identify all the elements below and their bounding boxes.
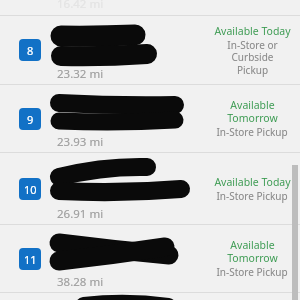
staticText: 11 bbox=[24, 252, 37, 267]
staticText: Available Tomorrow bbox=[227, 238, 278, 265]
staticText: 23.32 mi bbox=[57, 66, 104, 82]
button[interactable]: 10 bbox=[0, 153, 300, 224]
staticText: Available Today bbox=[214, 175, 291, 189]
staticText: 10 bbox=[24, 182, 37, 197]
staticText: 16.42 mi bbox=[57, 0, 104, 11]
button[interactable]: 11 bbox=[0, 225, 300, 292]
button[interactable]: 9 bbox=[0, 85, 300, 152]
staticText: 38.28 mi bbox=[57, 274, 104, 290]
staticText: 23.93 mi bbox=[57, 134, 104, 150]
staticText: In-Store Pickup bbox=[216, 265, 288, 279]
staticText: In-Store Pickup bbox=[216, 125, 288, 139]
staticText: In-Store or Curbside Pickup bbox=[227, 38, 278, 77]
button[interactable] bbox=[0, 293, 300, 300]
staticText: Available Today bbox=[214, 24, 291, 38]
staticText: 8 bbox=[27, 43, 34, 58]
staticText: In-Store Pickup bbox=[216, 189, 288, 203]
staticText: 9 bbox=[27, 112, 34, 127]
staticText: Available Tomorrow bbox=[227, 98, 278, 125]
button[interactable]: 8 bbox=[0, 16, 300, 84]
staticText: 26.91 mi bbox=[57, 206, 104, 222]
